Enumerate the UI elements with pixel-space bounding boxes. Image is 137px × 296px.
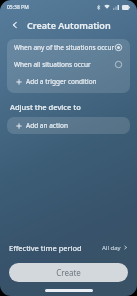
- staticText: 05:38 PM: [7, 4, 29, 11]
- staticText: When all situations occur: [14, 60, 91, 69]
- button[interactable]: Back: [6, 16, 24, 34]
- staticText: Create Automation: [27, 19, 111, 31]
- staticText: Adjust the device to: [10, 102, 81, 112]
- button[interactable]: Add an action: [7, 117, 130, 134]
- staticText: Create: [56, 267, 81, 278]
- button[interactable]: Effective time period: [0, 238, 137, 257]
- staticText: Effective time period: [9, 243, 82, 253]
- staticText: When any of the situations occur: [14, 43, 115, 52]
- button[interactable]: When any of the situations occur: [7, 39, 130, 56]
- button[interactable]: Add a trigger condition: [7, 73, 130, 90]
- staticText: All day: [102, 244, 121, 252]
- staticText: Add an action: [26, 121, 68, 130]
- button[interactable]: When all situations occur: [7, 56, 130, 73]
- staticText: Add a trigger condition: [26, 77, 97, 86]
- button[interactable]: Create: [9, 263, 128, 282]
